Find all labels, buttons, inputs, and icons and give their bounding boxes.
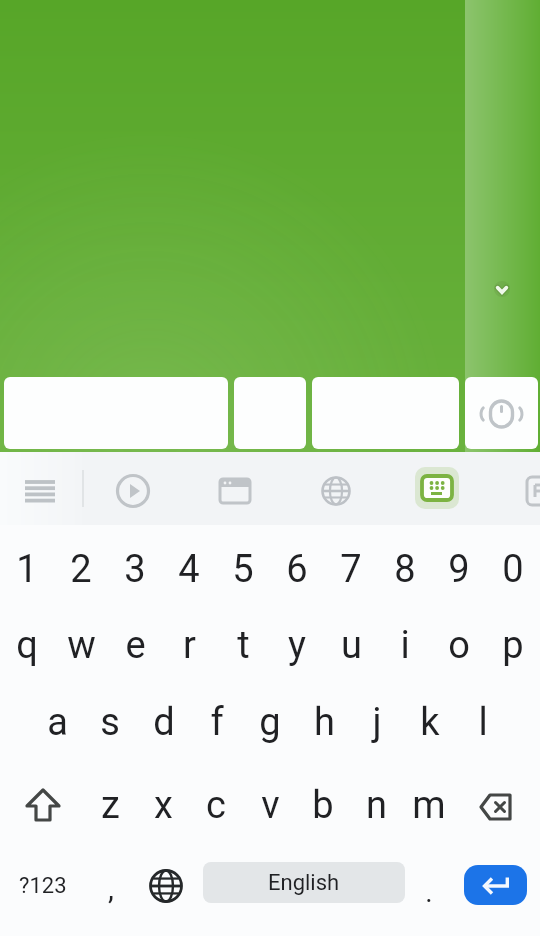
button[interactable]: 8 bbox=[379, 533, 431, 605]
button[interactable] bbox=[462, 775, 532, 837]
staticText: g bbox=[259, 700, 281, 745]
button[interactable]: y bbox=[271, 609, 323, 681]
button[interactable] bbox=[309, 464, 363, 518]
button[interactable]: 5 bbox=[217, 533, 269, 605]
button[interactable]: w bbox=[55, 609, 107, 681]
staticText: 7 bbox=[340, 547, 362, 592]
button[interactable]: 9 bbox=[433, 533, 485, 605]
staticText: s bbox=[100, 700, 120, 745]
staticText: k bbox=[420, 700, 440, 745]
staticText: 9 bbox=[448, 547, 470, 592]
button[interactable] bbox=[8, 775, 78, 837]
button[interactable]: z bbox=[84, 769, 136, 841]
button[interactable] bbox=[4, 377, 228, 449]
button[interactable]: English bbox=[203, 862, 405, 903]
staticText: w bbox=[67, 623, 96, 668]
staticText: , bbox=[108, 871, 114, 906]
button[interactable] bbox=[234, 377, 306, 449]
button[interactable]: x bbox=[137, 769, 189, 841]
staticText: q bbox=[16, 623, 38, 668]
button[interactable]: ?123 bbox=[4, 855, 82, 917]
staticText: v bbox=[261, 783, 280, 828]
button[interactable]: s bbox=[84, 686, 136, 758]
button[interactable] bbox=[13, 464, 67, 518]
button[interactable]: d bbox=[138, 686, 190, 758]
staticText: . bbox=[425, 876, 433, 909]
staticText: 1 bbox=[16, 547, 38, 592]
staticText: 5 bbox=[232, 547, 254, 592]
button[interactable]: c bbox=[190, 769, 242, 841]
staticText: z bbox=[101, 783, 120, 828]
staticText: 2 bbox=[70, 547, 92, 592]
button[interactable] bbox=[464, 865, 527, 905]
staticText: ?123 bbox=[19, 873, 67, 899]
staticText: p bbox=[502, 623, 524, 668]
button[interactable]: m bbox=[403, 769, 455, 841]
button[interactable] bbox=[208, 464, 262, 518]
button[interactable]: n bbox=[350, 769, 402, 841]
staticText: c bbox=[206, 783, 226, 828]
staticText: y bbox=[288, 623, 306, 668]
staticText: r bbox=[183, 623, 196, 668]
staticText: h bbox=[314, 700, 335, 745]
button[interactable]: 7 bbox=[325, 533, 377, 605]
button[interactable]: p bbox=[487, 609, 539, 681]
button[interactable]: v bbox=[244, 769, 296, 841]
button[interactable]: t bbox=[217, 609, 269, 681]
button[interactable] bbox=[410, 464, 464, 518]
staticText: u bbox=[341, 623, 362, 668]
button[interactable] bbox=[106, 464, 160, 518]
staticText: t bbox=[237, 623, 250, 668]
staticText: m bbox=[412, 783, 446, 828]
button[interactable] bbox=[490, 279, 514, 303]
staticText: 6 bbox=[286, 547, 308, 592]
button[interactable]: . bbox=[403, 856, 455, 928]
button[interactable] bbox=[312, 377, 459, 449]
button[interactable]: b bbox=[297, 769, 349, 841]
staticText: l bbox=[478, 700, 488, 745]
button[interactable]: 6 bbox=[271, 533, 323, 605]
button[interactable]: h bbox=[298, 686, 350, 758]
button[interactable]: 2 bbox=[55, 533, 107, 605]
button[interactable]: l bbox=[457, 686, 509, 758]
button[interactable]: 4 bbox=[163, 533, 215, 605]
button[interactable]: j bbox=[351, 686, 403, 758]
button[interactable] bbox=[512, 464, 540, 518]
staticText: a bbox=[47, 700, 68, 745]
button[interactable] bbox=[135, 855, 197, 917]
staticText: f bbox=[210, 700, 224, 745]
button[interactable]: , bbox=[85, 852, 137, 924]
staticText: 4 bbox=[178, 547, 200, 592]
staticText: o bbox=[448, 623, 470, 668]
staticText: j bbox=[372, 700, 382, 745]
button[interactable]: 3 bbox=[109, 533, 161, 605]
staticText: e bbox=[125, 623, 146, 668]
button[interactable]: 1 bbox=[1, 533, 53, 605]
button[interactable]: f bbox=[191, 686, 243, 758]
button[interactable]: u bbox=[325, 609, 377, 681]
staticText: 3 bbox=[124, 547, 146, 592]
staticText: 0 bbox=[502, 547, 524, 592]
button[interactable] bbox=[465, 377, 538, 449]
button[interactable]: o bbox=[433, 609, 485, 681]
staticText: b bbox=[312, 783, 334, 828]
staticText: n bbox=[366, 783, 387, 828]
button[interactable]: i bbox=[379, 609, 431, 681]
button[interactable]: 0 bbox=[487, 533, 539, 605]
staticText: English bbox=[268, 870, 340, 896]
staticText: x bbox=[154, 783, 173, 828]
button[interactable]: e bbox=[109, 609, 161, 681]
button[interactable]: k bbox=[404, 686, 456, 758]
button[interactable]: r bbox=[163, 609, 215, 681]
staticText: i bbox=[400, 623, 410, 668]
button[interactable]: g bbox=[244, 686, 296, 758]
button[interactable]: q bbox=[1, 609, 53, 681]
staticText: d bbox=[153, 700, 175, 745]
staticText: 8 bbox=[394, 547, 416, 592]
button[interactable]: a bbox=[31, 686, 83, 758]
